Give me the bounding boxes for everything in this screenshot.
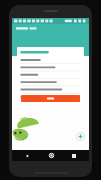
button[interactable]: Back	[18, 150, 36, 161]
button[interactable]: Add	[76, 132, 85, 141]
button[interactable]	[17, 47, 84, 105]
button[interactable]: Home	[42, 150, 60, 161]
button[interactable]	[12, 24, 89, 33]
button[interactable]: Recent apps	[65, 150, 83, 161]
button[interactable]	[21, 95, 80, 102]
